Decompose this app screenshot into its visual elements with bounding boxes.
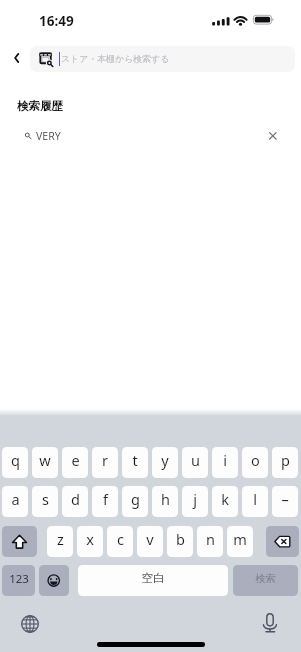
staticText: p: [281, 450, 290, 470]
button[interactable]: v: [137, 526, 163, 557]
staticText: b: [176, 529, 185, 549]
button[interactable]: o: [242, 447, 268, 478]
button[interactable]: Voice input: [257, 606, 286, 638]
staticText: 検索: [255, 572, 276, 585]
staticText: q: [11, 450, 20, 470]
button[interactable]: Remove: [262, 125, 283, 146]
button[interactable]: Emoji: [39, 565, 69, 596]
staticText: h: [161, 489, 170, 509]
button[interactable]: t: [122, 447, 148, 478]
button[interactable]: p: [272, 447, 298, 478]
staticText: –: [281, 489, 289, 509]
button[interactable]: a: [2, 486, 28, 517]
staticText: x: [86, 529, 94, 549]
staticText: c: [117, 529, 124, 549]
staticText: y: [161, 450, 169, 470]
staticText: ストア・本棚から検索する: [61, 53, 170, 64]
staticText: v: [146, 529, 154, 549]
button[interactable]: Backspace: [266, 526, 299, 557]
button[interactable]: c: [107, 526, 133, 557]
button[interactable]: i: [212, 447, 238, 478]
button[interactable]: w: [32, 447, 58, 478]
button[interactable]: VERY: [0, 122, 301, 150]
button[interactable]: Shift: [2, 526, 37, 557]
staticText: a: [11, 489, 20, 509]
button[interactable]: 123: [2, 565, 35, 596]
button[interactable]: Back: [4, 44, 30, 72]
button[interactable]: f: [92, 486, 118, 517]
button[interactable]: d: [62, 486, 88, 517]
staticText: 検索履歴: [17, 99, 63, 113]
button[interactable]: j: [182, 486, 208, 517]
button[interactable]: q: [2, 447, 28, 478]
button[interactable]: g: [122, 486, 148, 517]
button[interactable]: 検索: [233, 565, 298, 596]
staticText: 16:49: [39, 12, 74, 30]
staticText: n: [206, 529, 215, 549]
button[interactable]: ストア・本棚から検索する: [30, 46, 295, 72]
staticText: o: [251, 450, 260, 470]
staticText: g: [131, 489, 140, 509]
button[interactable]: b: [167, 526, 193, 557]
staticText: s: [42, 489, 49, 509]
staticText: r: [102, 450, 108, 470]
button[interactable]: h: [152, 486, 178, 517]
staticText: i: [223, 450, 227, 470]
button[interactable]: k: [212, 486, 238, 517]
button[interactable]: e: [62, 447, 88, 478]
button[interactable]: u: [182, 447, 208, 478]
button[interactable]: 空白: [78, 565, 228, 596]
button[interactable]: m: [227, 526, 253, 557]
staticText: t: [132, 450, 138, 470]
staticText: j: [193, 489, 197, 509]
staticText: 空白: [141, 571, 165, 586]
staticText: k: [221, 489, 229, 509]
button[interactable]: y: [152, 447, 178, 478]
staticText: e: [71, 450, 80, 470]
staticText: m: [233, 529, 247, 549]
button[interactable]: r: [92, 447, 118, 478]
button[interactable]: –: [272, 486, 298, 517]
staticText: 123: [9, 571, 29, 587]
staticText: d: [71, 489, 80, 509]
button[interactable]: z: [47, 526, 73, 557]
button[interactable]: n: [197, 526, 223, 557]
staticText: z: [57, 529, 64, 549]
staticText: u: [191, 450, 200, 470]
button[interactable]: s: [32, 486, 58, 517]
staticText: VERY: [36, 129, 61, 143]
button[interactable]: x: [77, 526, 103, 557]
staticText: w: [39, 450, 51, 470]
button[interactable]: l: [242, 486, 268, 517]
button[interactable]: Change keyboard: [15, 610, 44, 638]
staticText: f: [103, 489, 108, 509]
staticText: l: [253, 489, 257, 509]
